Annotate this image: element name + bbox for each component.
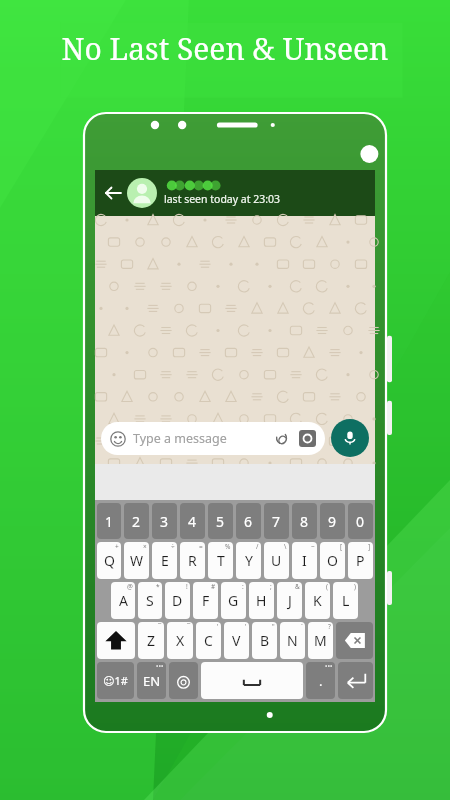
button[interactable]: Attach — [273, 430, 291, 448]
button[interactable]: ☺1# — [97, 662, 134, 699]
staticText: 7 — [272, 512, 281, 531]
button[interactable]: 9 — [320, 503, 345, 539]
staticText: * — [156, 582, 160, 591]
button[interactable]: Q — [97, 542, 121, 579]
staticText: ( — [326, 582, 328, 591]
button[interactable]: Shift — [97, 622, 135, 659]
staticText: S — [146, 591, 154, 610]
staticText: ! — [186, 582, 188, 591]
button[interactable]: 7 — [264, 503, 289, 539]
button[interactable]: G — [221, 582, 246, 619]
button[interactable]: Y — [236, 542, 261, 579]
staticText: ) — [354, 582, 356, 591]
button[interactable]: Settings — [169, 662, 198, 699]
staticText: Q — [104, 551, 115, 570]
staticText: 2 — [132, 512, 141, 531]
staticText: " — [272, 622, 275, 631]
staticText: W — [130, 551, 144, 570]
button[interactable]: O — [320, 542, 345, 579]
button[interactable]: A — [111, 582, 135, 619]
button[interactable]: P — [348, 542, 373, 579]
button[interactable]: 5 — [208, 503, 233, 539]
staticText: ? — [328, 622, 331, 631]
button[interactable]: Type a message — [101, 422, 325, 455]
button[interactable]: Enter — [338, 662, 373, 699]
staticText: U — [271, 551, 282, 570]
staticText: / — [256, 542, 259, 551]
button[interactable]: J — [277, 582, 302, 619]
button[interactable]: N — [280, 622, 305, 659]
staticText: Z — [147, 631, 156, 650]
staticText: 8 — [300, 512, 309, 531]
button[interactable]: U — [264, 542, 289, 579]
staticText: K — [313, 591, 322, 610]
button[interactable]: 6 — [236, 503, 261, 539]
staticText: No Last Seen & Unseen — [0, 28, 450, 69]
button[interactable]: M — [308, 622, 333, 659]
staticText: # — [211, 582, 216, 591]
staticText: H — [256, 591, 267, 610]
staticText: G — [228, 591, 239, 610]
button[interactable]: B — [252, 622, 277, 659]
button[interactable]: L — [333, 582, 358, 619]
staticText: ] — [368, 542, 371, 551]
button[interactable]: X — [167, 622, 193, 659]
button[interactable]: Back — [95, 170, 375, 216]
staticText: F — [202, 591, 210, 610]
staticText: A — [119, 591, 128, 610]
staticText: : — [242, 582, 244, 591]
button[interactable]: 3 — [152, 503, 177, 539]
staticText: C — [204, 631, 213, 650]
button[interactable]: D — [165, 582, 190, 619]
button[interactable]: R — [180, 542, 205, 579]
staticText: L — [342, 591, 350, 610]
button[interactable]: W — [124, 542, 149, 579]
staticText: last seen today at 23:03 — [164, 192, 281, 206]
staticText: ÷ — [171, 542, 175, 551]
staticText: ' — [217, 622, 219, 631]
button[interactable]: S — [138, 582, 162, 619]
button[interactable]: 4 — [180, 503, 205, 539]
button[interactable]: 1 — [97, 503, 121, 539]
button[interactable]: Z — [138, 622, 164, 659]
staticText: ` — [301, 622, 303, 631]
staticText: 1 — [105, 512, 114, 531]
button[interactable]: Space — [201, 662, 303, 699]
staticText: Type a message — [133, 430, 273, 447]
staticText: Y — [245, 551, 253, 570]
button[interactable]: V — [224, 622, 249, 659]
button[interactable]: 0 — [348, 503, 373, 539]
button[interactable]: . — [306, 662, 335, 699]
button[interactable]: H — [249, 582, 274, 619]
staticText: 9 — [328, 512, 337, 531]
button[interactable]: Camera — [299, 430, 316, 447]
button[interactable]: E — [152, 542, 177, 579]
staticText: 6 — [244, 512, 253, 531]
staticText: ; — [270, 582, 272, 591]
staticText: + — [115, 542, 119, 551]
staticText: ¯ — [158, 622, 162, 631]
button[interactable]: 2 — [124, 503, 149, 539]
staticText: = — [199, 542, 203, 551]
staticText: . — [319, 672, 323, 690]
staticText: ' — [245, 622, 247, 631]
button[interactable]: K — [305, 582, 330, 619]
staticText: ☺1# — [103, 673, 128, 688]
staticText: 4 — [188, 512, 197, 531]
button[interactable]: 8 — [292, 503, 317, 539]
button[interactable]: Back — [101, 181, 125, 205]
button[interactable]: Voice message — [331, 419, 369, 457]
staticText: EN — [143, 672, 161, 690]
staticText: ¯ — [187, 622, 191, 631]
staticText: % — [225, 542, 231, 551]
staticText: 5 — [216, 512, 225, 531]
staticText: X — [176, 631, 185, 650]
button[interactable]: C — [196, 622, 221, 659]
staticText: E — [161, 551, 169, 570]
button[interactable]: Backspace — [336, 622, 373, 659]
button[interactable]: I — [292, 542, 317, 579]
button[interactable]: EN — [137, 662, 166, 699]
button[interactable]: F — [193, 582, 218, 619]
button[interactable]: T — [208, 542, 233, 579]
staticText: V — [232, 631, 241, 650]
